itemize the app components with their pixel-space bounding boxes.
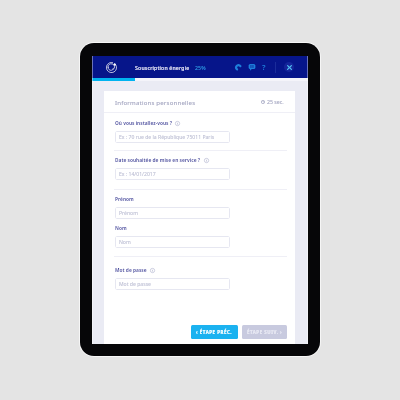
button[interactable]: Ex : 70 rue de la République 75011 Paris xyxy=(115,131,230,143)
button[interactable]: Chat xyxy=(247,62,257,72)
button[interactable]: Nom xyxy=(115,236,230,248)
staticText: Mot de passe xyxy=(119,281,151,288)
button[interactable]: ÉTAPE SUIV. › xyxy=(242,325,287,339)
staticText: Nom xyxy=(119,239,131,246)
staticText: ‹ ÉTAPE PRÉC. xyxy=(196,329,233,335)
staticText: Prénom xyxy=(115,196,134,203)
button[interactable]: Logo xyxy=(106,62,117,73)
staticText: Informations personnelles xyxy=(115,98,196,106)
staticText: 25 sec. xyxy=(267,98,284,105)
staticText: ? xyxy=(262,62,266,72)
staticText: Souscription énergie xyxy=(135,64,190,71)
staticText: Ex : 14/01/2017 xyxy=(119,171,156,178)
button[interactable]: Call xyxy=(233,62,243,72)
button[interactable]: Ex : 14/01/2017 xyxy=(115,168,230,180)
staticText: 25% xyxy=(195,64,206,71)
button[interactable]: Close xyxy=(284,62,294,72)
staticText: Ex : 70 rue de la République 75011 Paris xyxy=(119,134,215,141)
button[interactable]: Help xyxy=(259,62,269,72)
staticText: Date souhaitée de mise en service ? xyxy=(115,157,201,164)
staticText: Mot de passe xyxy=(115,267,147,274)
staticText: Où vous installez-vous ? xyxy=(115,120,172,127)
staticText: Nom xyxy=(115,225,127,232)
staticText: ÉTAPE SUIV. › xyxy=(247,329,283,335)
button[interactable]: Prénom xyxy=(115,207,230,219)
button[interactable]: ‹ ÉTAPE PRÉC. xyxy=(191,325,238,339)
staticText: Prénom xyxy=(119,210,138,217)
button[interactable]: Mot de passe xyxy=(115,278,230,290)
